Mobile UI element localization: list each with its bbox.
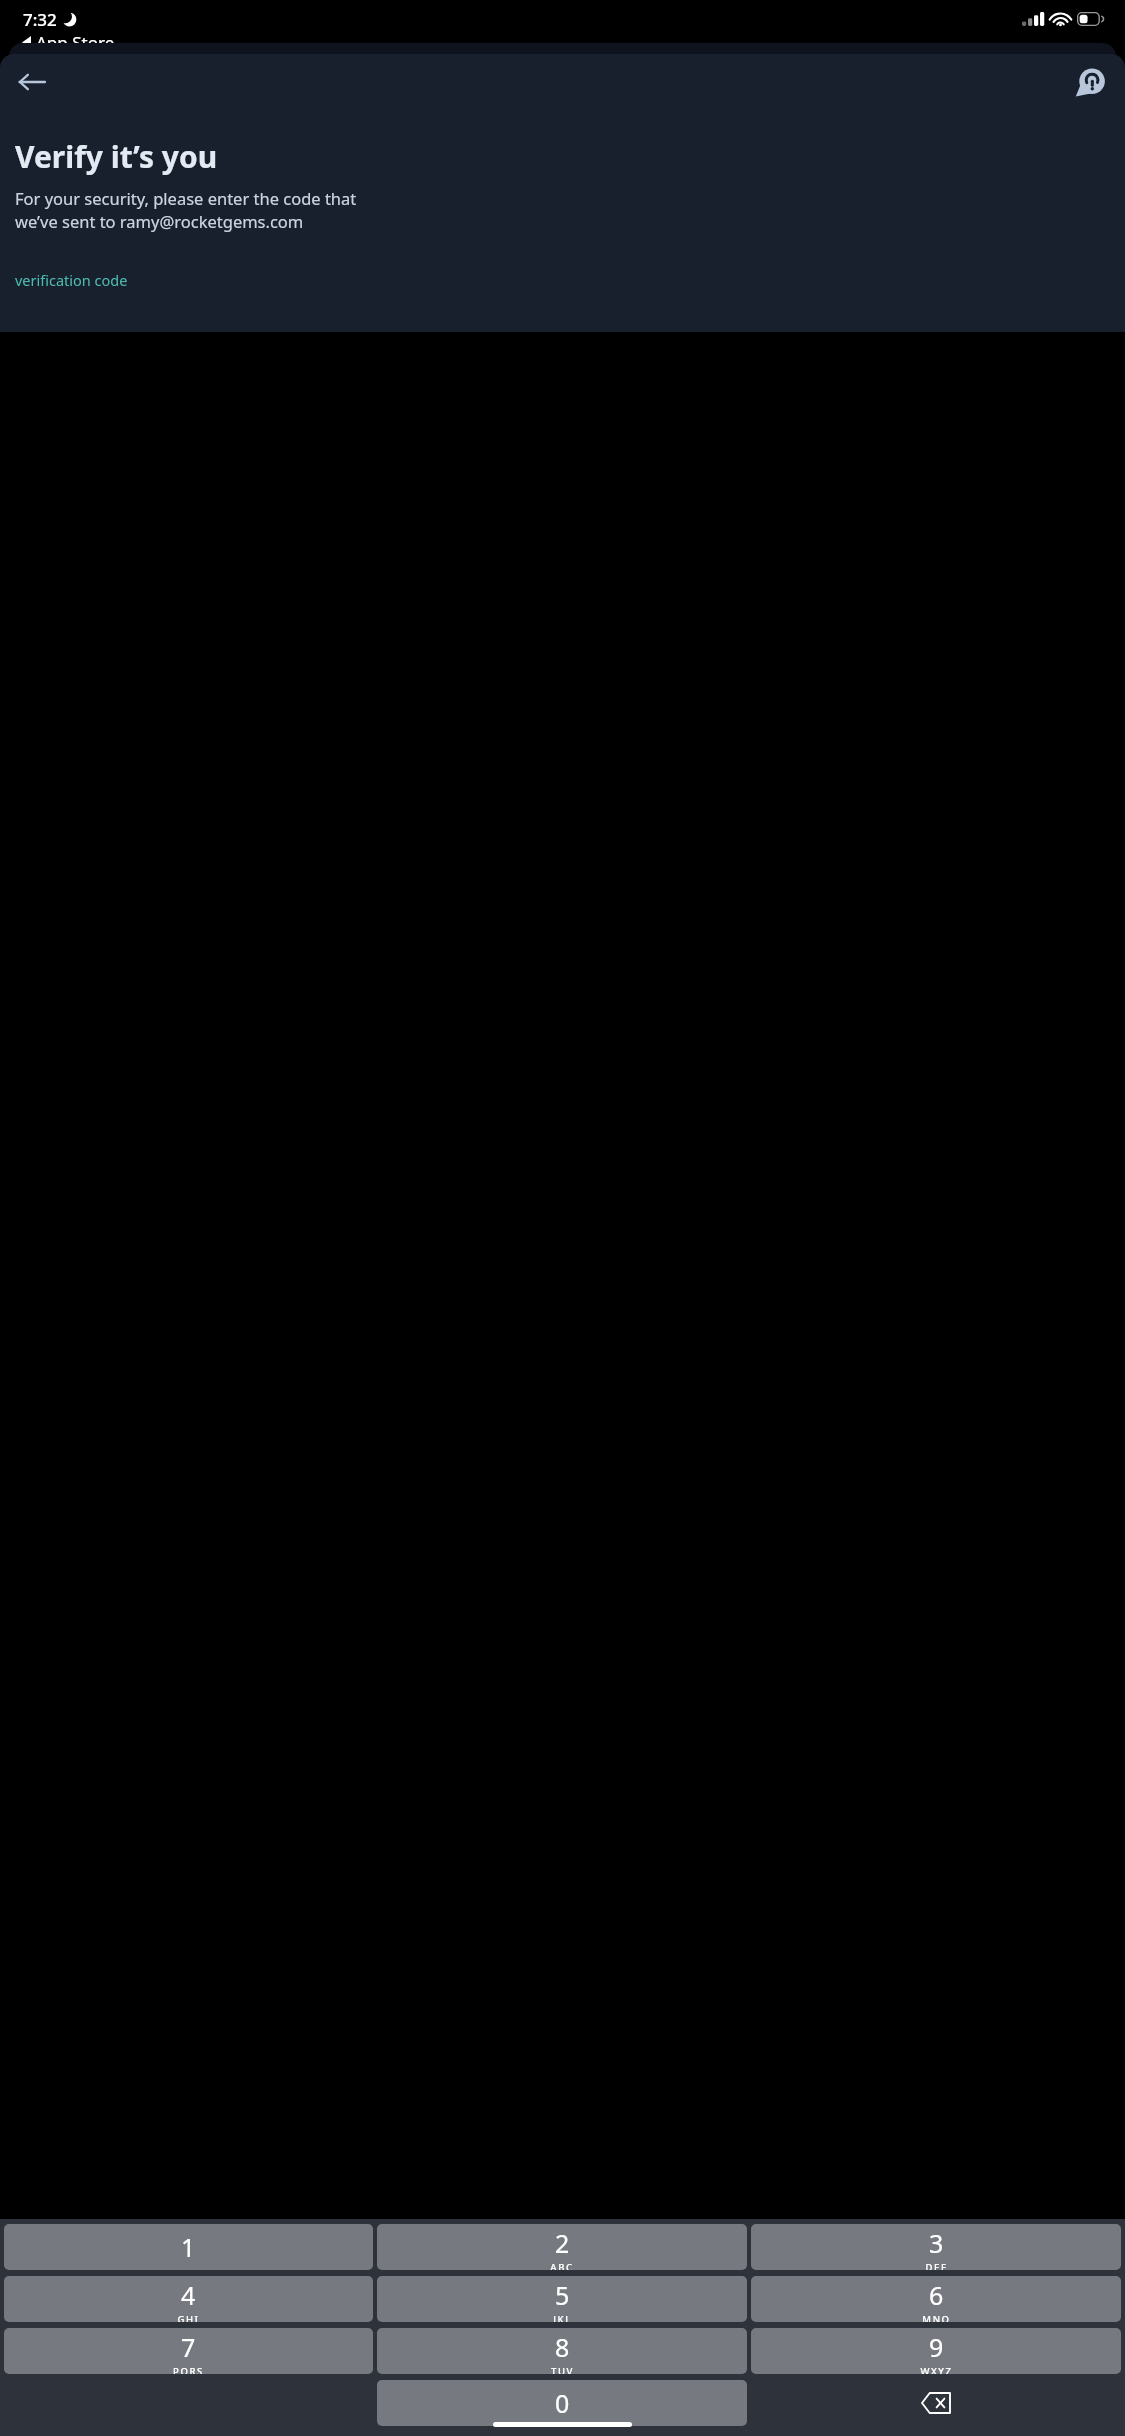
staticText: PQRS bbox=[173, 2365, 204, 2374]
button[interactable]: Help bbox=[1067, 58, 1115, 106]
button[interactable]: Delete bbox=[751, 2380, 1121, 2426]
staticText: 9 bbox=[929, 2330, 944, 2364]
button[interactable]: 0 bbox=[377, 2380, 747, 2426]
staticText: 2 bbox=[555, 2226, 570, 2260]
staticText: 3 bbox=[929, 2226, 944, 2260]
staticText: WXYZ bbox=[920, 2365, 953, 2374]
staticText: verification code bbox=[15, 270, 128, 290]
button[interactable]: 2 bbox=[377, 2224, 747, 2270]
button[interactable]: 1 bbox=[4, 2224, 373, 2270]
staticText: 7:32 bbox=[23, 8, 57, 31]
button[interactable]: 3 bbox=[751, 2224, 1121, 2270]
staticText: 5 bbox=[555, 2278, 570, 2312]
staticText: 8 bbox=[555, 2330, 570, 2364]
staticText: DEF bbox=[925, 2261, 948, 2270]
button[interactable]: 8 bbox=[377, 2328, 747, 2374]
button[interactable]: Back bbox=[8, 58, 56, 106]
staticText: 0 bbox=[555, 2386, 570, 2420]
staticText: App Store bbox=[36, 31, 115, 54]
staticText: 6 bbox=[929, 2278, 944, 2312]
staticText: For your security, please enter the code… bbox=[15, 187, 357, 233]
button[interactable]: 5 bbox=[377, 2276, 747, 2322]
staticText: ABC bbox=[550, 2261, 574, 2270]
staticText: Verify it’s you bbox=[15, 136, 218, 177]
staticText: MNO bbox=[922, 2313, 951, 2322]
button[interactable]: 7 bbox=[4, 2328, 373, 2374]
staticText: TUV bbox=[551, 2365, 574, 2374]
staticText: 4 bbox=[181, 2278, 196, 2312]
staticText: 1 bbox=[181, 2230, 196, 2264]
button[interactable]: 9 bbox=[751, 2328, 1121, 2374]
button[interactable]: 4 bbox=[4, 2276, 373, 2322]
button[interactable]: 6 bbox=[751, 2276, 1121, 2322]
staticText: 7 bbox=[181, 2330, 196, 2364]
staticText: GHI bbox=[177, 2313, 200, 2322]
button[interactable]: App Store bbox=[22, 31, 115, 54]
staticText: JKL bbox=[553, 2313, 572, 2322]
